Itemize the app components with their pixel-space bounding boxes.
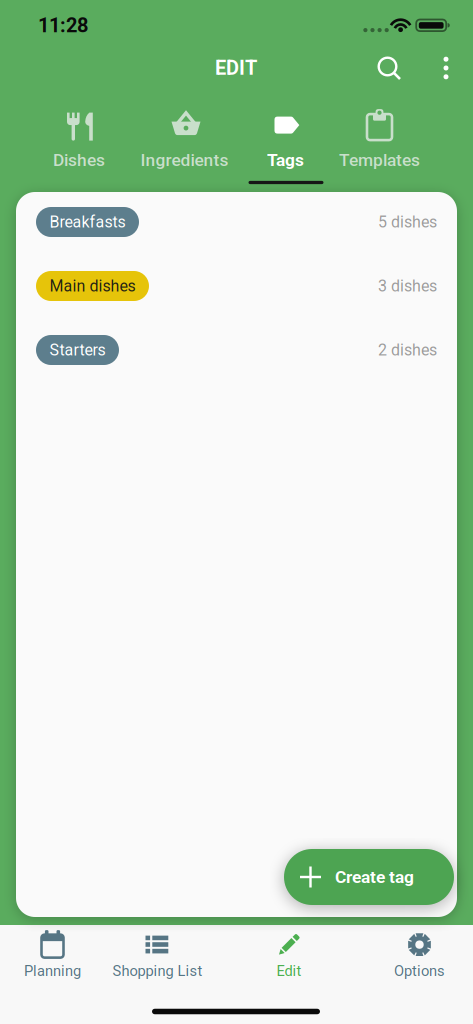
button[interactable]: Planning	[0, 924, 107, 986]
staticText: 11:28	[38, 14, 88, 37]
button[interactable]: Tags	[267, 112, 304, 170]
button[interactable]: Main dishes	[16, 254, 457, 318]
staticText: Breakfasts	[49, 213, 125, 231]
button[interactable]: Breakfasts	[16, 190, 457, 254]
staticText: Templates	[339, 150, 420, 170]
button[interactable]: Search	[368, 47, 412, 91]
button[interactable]: Create tag	[284, 849, 454, 905]
button[interactable]: Templates	[339, 112, 420, 170]
staticText: Planning	[24, 963, 81, 979]
staticText: Dishes	[53, 150, 105, 170]
button[interactable]: Edit	[234, 924, 344, 986]
button[interactable]: Shopping List	[102, 924, 212, 986]
staticText: EDIT	[215, 57, 257, 79]
staticText: 2 dishes	[378, 341, 437, 359]
staticText: Create tag	[335, 867, 414, 887]
button[interactable]: Ingredients	[140, 112, 228, 170]
staticText: 3 dishes	[378, 277, 437, 295]
button[interactable]: Starters	[16, 318, 457, 382]
staticText: Ingredients	[140, 150, 228, 170]
button[interactable]: Dishes	[53, 112, 105, 170]
staticText: Tags	[267, 150, 304, 170]
staticText: Options	[394, 963, 445, 979]
staticText: Main dishes	[49, 277, 135, 295]
staticText: Shopping List	[112, 963, 202, 979]
staticText: Edit	[276, 963, 301, 979]
button[interactable]: Options	[364, 924, 473, 986]
staticText: Starters	[49, 341, 105, 359]
staticText: 5 dishes	[378, 213, 437, 231]
button[interactable]: More options	[431, 46, 461, 90]
